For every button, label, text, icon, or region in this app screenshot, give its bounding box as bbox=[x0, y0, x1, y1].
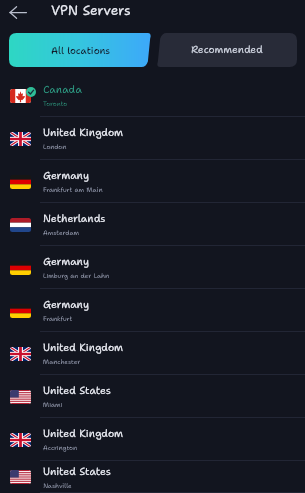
button[interactable]: United Kingdom bbox=[0, 332, 305, 375]
button[interactable]: Germany bbox=[0, 289, 305, 332]
staticText: Limburg an der Lahn bbox=[43, 271, 109, 280]
button[interactable]: United Kingdom bbox=[0, 117, 305, 160]
staticText: Nashville bbox=[43, 481, 72, 490]
staticText: All locations bbox=[51, 44, 111, 57]
staticText: VPN Servers bbox=[51, 1, 131, 19]
staticText: Germany bbox=[43, 168, 89, 182]
staticText: United Kingdom bbox=[43, 125, 124, 139]
button[interactable]: Back bbox=[0, 1, 35, 24]
staticText: Amsterdam bbox=[43, 228, 80, 237]
staticText: Accrington bbox=[43, 443, 78, 452]
button[interactable]: Netherlands bbox=[0, 203, 305, 246]
staticText: Germany bbox=[43, 254, 89, 268]
staticText: Netherlands bbox=[43, 211, 106, 225]
staticText: United States bbox=[43, 383, 111, 397]
staticText: United Kingdom bbox=[43, 426, 124, 440]
button[interactable]: United States bbox=[0, 375, 305, 418]
staticText: Frankfurt am Main bbox=[43, 185, 103, 194]
staticText: Frankfurt bbox=[43, 314, 73, 323]
button[interactable]: United Kingdom bbox=[0, 418, 305, 461]
button[interactable]: All locations bbox=[9, 33, 152, 67]
staticText: Canada bbox=[43, 82, 82, 96]
staticText: United States bbox=[43, 464, 111, 478]
staticText: Germany bbox=[43, 297, 89, 311]
staticText: Recommended bbox=[191, 43, 263, 57]
button[interactable]: United States bbox=[0, 461, 305, 493]
staticText: Manchester bbox=[43, 357, 81, 366]
staticText: Toronto bbox=[43, 99, 68, 108]
button[interactable]: Germany bbox=[0, 160, 305, 203]
staticText: Miami bbox=[43, 400, 63, 409]
button[interactable]: Canada bbox=[0, 74, 305, 117]
button[interactable]: Germany bbox=[0, 246, 305, 289]
staticText: United Kingdom bbox=[43, 340, 124, 354]
button[interactable]: Recommended bbox=[156, 33, 297, 67]
staticText: London bbox=[43, 142, 67, 151]
